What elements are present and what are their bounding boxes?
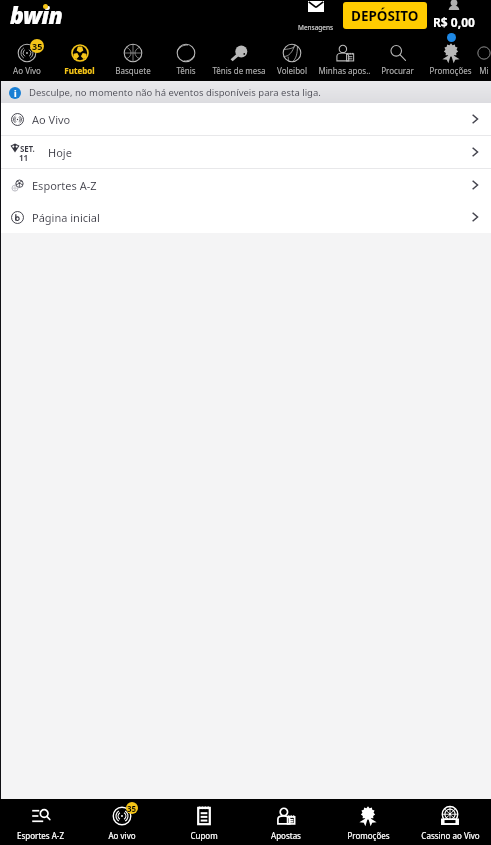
button[interactable]: Esportes A-Z — [0, 799, 81, 845]
staticText: 35 — [127, 803, 137, 814]
staticText: Tênis — [176, 65, 196, 76]
staticText: Minhas apos... — [318, 65, 371, 76]
staticText: Cupom — [190, 830, 218, 841]
staticText: Esportes A-Z — [32, 178, 97, 193]
button[interactable]: bwin home — [10, 2, 63, 33]
button[interactable]: Promoções — [327, 799, 409, 845]
staticText: Ao Vivo — [13, 65, 41, 76]
staticText: bwin — [10, 0, 63, 30]
button[interactable]: Voleibol — [265, 35, 318, 81]
button[interactable]: Tênis de mesa — [212, 35, 265, 81]
staticText: Mi — [479, 65, 489, 76]
button[interactable]: Cassino ao Vivo — [409, 799, 491, 845]
button[interactable]: Promoções — [424, 35, 477, 81]
button[interactable]: Ao Vivo — [0, 103, 491, 135]
button[interactable]: Procurar — [371, 35, 424, 81]
staticText: Esportes A-Z — [17, 830, 64, 841]
button[interactable]: Mi — [477, 35, 491, 81]
staticText: Procurar — [381, 65, 414, 76]
staticText: SET. — [20, 143, 35, 154]
staticText: Ao Vivo — [32, 112, 71, 127]
staticText: 11 — [19, 152, 29, 163]
staticText: Promoções — [347, 830, 390, 841]
staticText: Tênis de mesa — [212, 65, 265, 76]
button[interactable]: Apostas — [245, 799, 327, 845]
staticText: Promoções — [429, 65, 472, 76]
button[interactable]: Tênis — [159, 35, 212, 81]
staticText: Ao vivo — [108, 830, 136, 841]
staticText: Hoje — [48, 145, 72, 160]
button[interactable]: 35 — [81, 799, 163, 845]
staticText: Cassino ao Vivo — [421, 830, 480, 841]
button[interactable]: Cupom — [163, 799, 245, 845]
button[interactable]: DEPÓSITO — [343, 2, 427, 29]
button[interactable]: SET. — [0, 136, 491, 168]
staticText: Apostas — [271, 830, 301, 841]
staticText: Mensagens — [298, 23, 334, 32]
button[interactable]: Futebol — [53, 35, 106, 81]
staticText: R$ 0,00 — [433, 14, 475, 30]
button[interactable]: 35 — [0, 35, 53, 81]
staticText: 35 — [32, 40, 43, 52]
staticText: Futebol — [64, 65, 95, 76]
staticText: Voleibol — [277, 65, 307, 76]
staticText: Basquete — [115, 65, 151, 76]
staticText: i — [14, 87, 17, 99]
button[interactable]: Minhas apos... — [318, 35, 371, 81]
button[interactable]: Basquete — [106, 35, 159, 81]
button[interactable]: Conta — [433, 0, 491, 35]
button[interactable]: Mensagens — [294, 0, 338, 35]
staticText: Desculpe, no momento não há eventos disp… — [29, 86, 321, 99]
button[interactable]: Página inicial — [0, 201, 491, 233]
staticText: DEPÓSITO — [351, 7, 419, 25]
staticText: Página inicial — [32, 210, 100, 225]
button[interactable]: Esportes A-Z — [0, 169, 491, 201]
